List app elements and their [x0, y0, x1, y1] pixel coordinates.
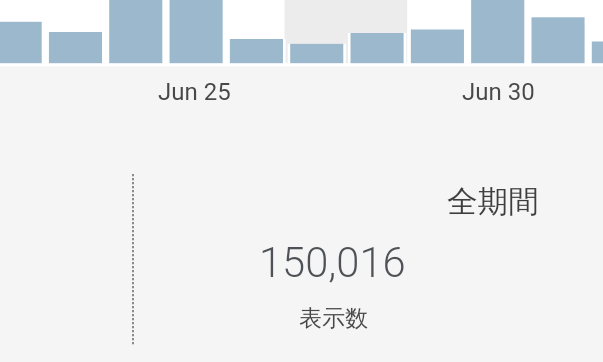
staticText: 表示数 [299, 304, 368, 333]
button[interactable]: 全期間 [440, 178, 532, 217]
button[interactable]: 150,016 [252, 232, 412, 336]
staticText: Jun 25 [158, 78, 231, 106]
staticText: 150,016 [259, 238, 406, 287]
staticText: 全期間 [447, 183, 539, 222]
button[interactable]: Daily impressions bar chart [0, 0, 603, 66]
staticText: Jun 30 [462, 78, 535, 106]
